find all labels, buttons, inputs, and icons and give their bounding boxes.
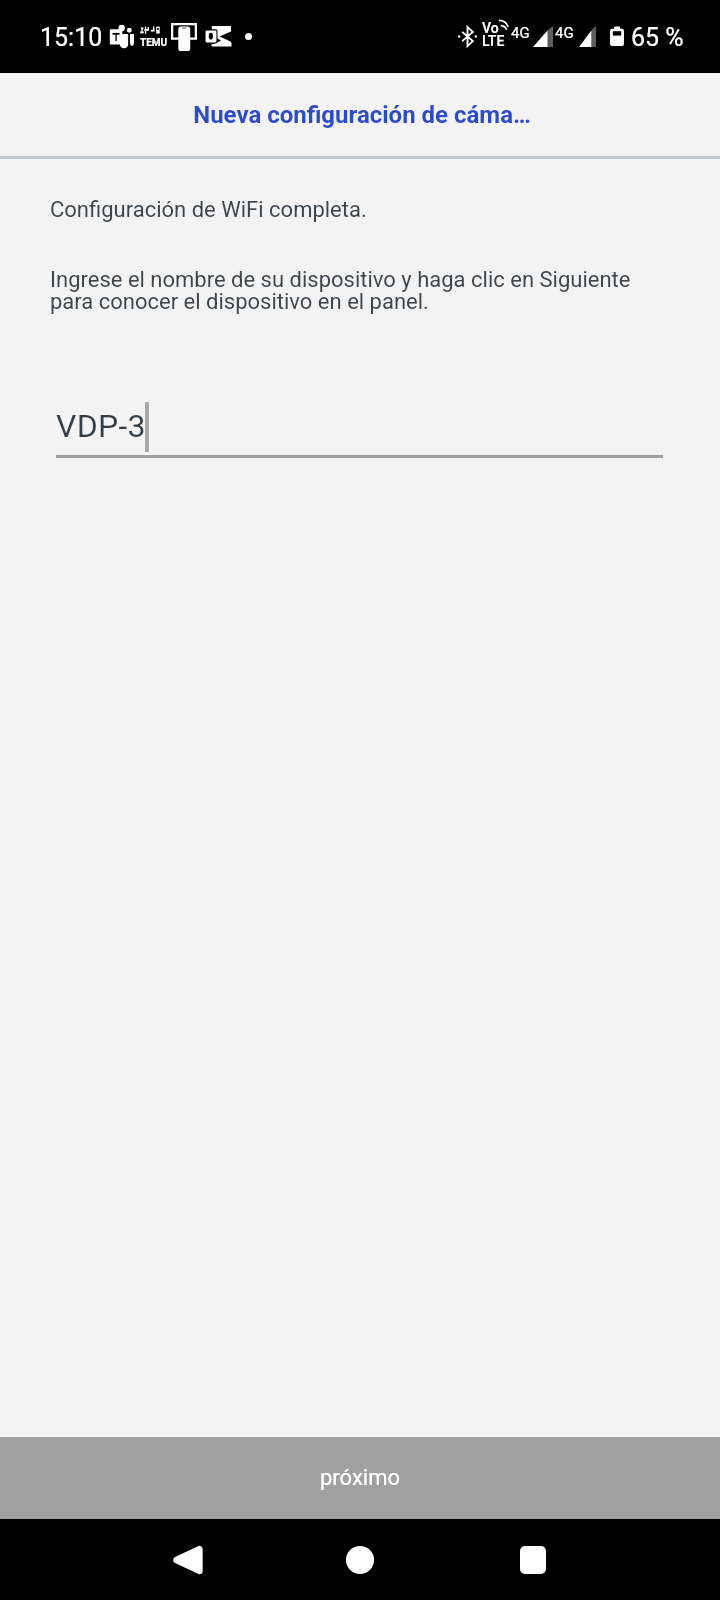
staticText: TEMU [140, 37, 168, 49]
staticText: 65 % [631, 23, 684, 52]
staticText: Ingrese el nombre de su dispositivo y ha… [50, 267, 631, 315]
staticText: Configuración de WiFi completa. [50, 197, 367, 223]
button[interactable]: Back [150, 1523, 224, 1597]
staticText: Vo [482, 20, 499, 36]
staticText: Nueva configuración de cáma… [193, 101, 531, 129]
staticText: 4G [555, 24, 574, 42]
staticText: LTE [482, 33, 505, 49]
staticText: VDP-3 [56, 407, 146, 445]
staticText: 15:10 [40, 23, 103, 52]
staticText: próximo [320, 1465, 401, 1491]
button[interactable]: Home [323, 1523, 397, 1597]
staticText: 4G [511, 24, 530, 42]
button[interactable]: Recent apps [496, 1523, 570, 1597]
button[interactable]: próximo [0, 1437, 720, 1519]
